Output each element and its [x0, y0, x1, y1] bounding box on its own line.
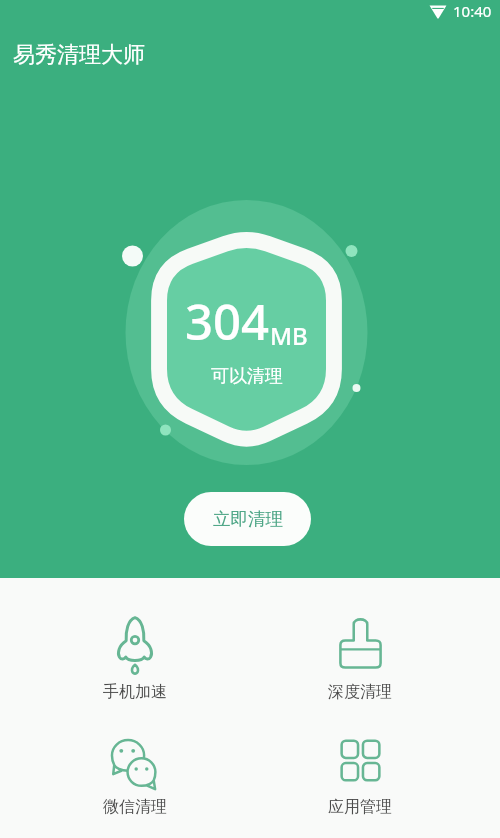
staticText: MB [270, 319, 308, 352]
staticText: 手机加速 [103, 682, 167, 702]
staticText: 304 [185, 288, 270, 355]
button[interactable]: 微信清理 [22, 727, 247, 838]
staticText: 微信清理 [103, 797, 167, 817]
staticText: 应用管理 [328, 797, 392, 817]
button[interactable]: 应用管理 [247, 727, 473, 838]
staticText: 可以清理 [211, 365, 283, 388]
staticText: 深度清理 [328, 682, 392, 702]
staticText: 10:40 [453, 1, 492, 21]
staticText: 易秀清理大师 [13, 41, 145, 69]
staticText: 立即清理 [213, 508, 283, 530]
button[interactable]: 立即清理 [184, 492, 311, 546]
button[interactable]: 深度清理 [247, 612, 473, 727]
button[interactable]: 手机加速 [22, 612, 247, 727]
